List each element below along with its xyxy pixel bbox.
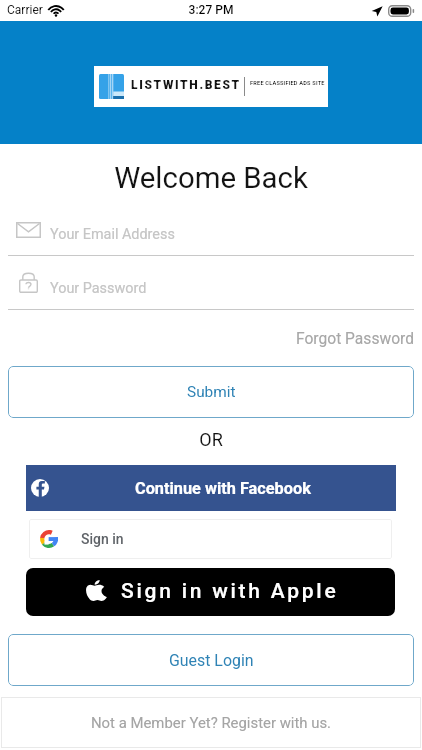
staticText: Forgot Password bbox=[296, 330, 414, 348]
button[interactable]: Not a Member Yet? Register with us. bbox=[1, 697, 421, 748]
button[interactable]: Sign in bbox=[29, 519, 392, 559]
staticText: Your Email Address bbox=[50, 226, 175, 243]
staticText: 3:27 PM bbox=[0, 3, 422, 17]
button[interactable]: Forgot Password bbox=[264, 323, 414, 355]
staticText: Carrier bbox=[7, 3, 43, 17]
button[interactable]: Sign in with Apple bbox=[26, 568, 395, 616]
button[interactable]: Your Email Address bbox=[0, 212, 422, 256]
button[interactable]: Continue with Facebook bbox=[26, 465, 396, 511]
staticText: Guest Login bbox=[169, 651, 254, 670]
staticText: Welcome Back bbox=[0, 161, 422, 195]
staticText: Submit bbox=[187, 383, 236, 401]
staticText: OR bbox=[0, 429, 422, 450]
staticText: Sign in with Apple bbox=[121, 579, 339, 604]
button[interactable]: Guest Login bbox=[8, 634, 414, 686]
staticText: Your Password bbox=[50, 280, 147, 297]
button[interactable]: Your Password bbox=[0, 266, 422, 310]
staticText: Continue with Facebook bbox=[135, 479, 311, 498]
staticText: Sign in bbox=[81, 531, 124, 547]
staticText: Not a Member Yet? Register with us. bbox=[91, 714, 332, 731]
staticText: LISTWITH.BEST bbox=[131, 78, 241, 92]
button[interactable]: Submit bbox=[8, 366, 414, 418]
staticText: FREE CLASSIFIED ADS SITE bbox=[250, 80, 325, 87]
